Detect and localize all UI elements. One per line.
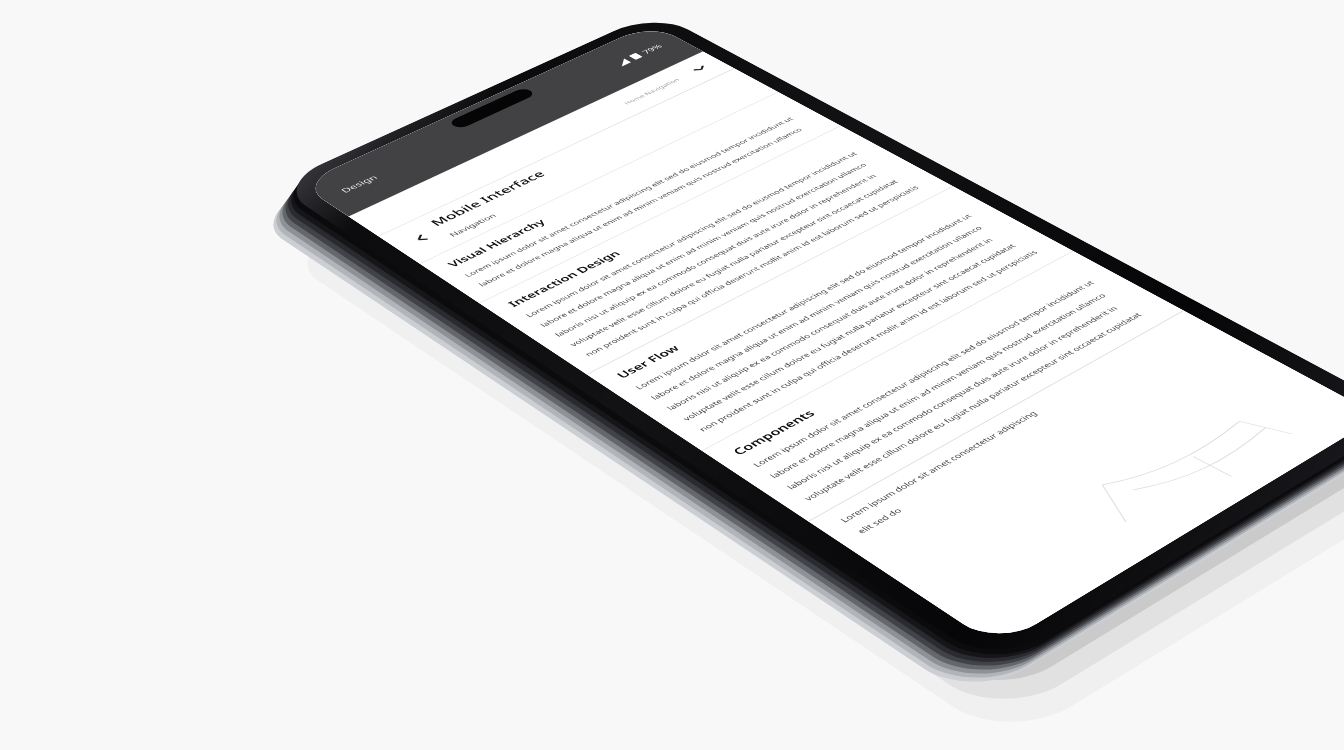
- button[interactable]: Back: [393, 223, 449, 254]
- staticText: Mobile Interface: [426, 168, 549, 229]
- staticText: non proident sunt in culpa qui officia d…: [696, 248, 1040, 433]
- staticText: Lorem ipsum dolor sit amet consectetur a…: [523, 150, 859, 319]
- staticText: voluptate velit esse cillum dolore eu fu…: [567, 178, 901, 348]
- staticText: Lorem ipsum dolor sit amet consectetur a…: [462, 116, 795, 279]
- staticText: Visual Hierarchy: [444, 217, 549, 269]
- button[interactable]: Interaction Design: [480, 126, 953, 374]
- button[interactable]: Design: [338, 173, 381, 194]
- staticText: labore et dolore magna aliqua ut enim ad…: [767, 292, 1108, 480]
- staticText: laboris nisi ut aliquip ex ea commodo co…: [552, 173, 879, 338]
- staticText: voluptate velit esse cillum dolore eu fu…: [801, 310, 1145, 503]
- staticText: Lorem ipsum dolor sit amet consectetur a…: [750, 279, 1097, 469]
- staticText: labore et dolore magna aliqua ut enim ad…: [476, 126, 804, 288]
- staticText: Interaction Design: [504, 248, 623, 309]
- button[interactable]: Lorem ipsum dolor sit amet consectetur a…: [809, 311, 1234, 554]
- staticText: laboris nisi ut aliquip ex ea commodo co…: [784, 304, 1120, 491]
- button[interactable]: Back: [378, 68, 778, 264]
- button[interactable]: Home Navigation: [622, 77, 681, 105]
- button[interactable]: Components: [702, 251, 1183, 521]
- button[interactable]: User Flow: [587, 186, 1073, 451]
- staticText: elit sed do: [854, 506, 905, 535]
- staticText: non proident sunt in culpa qui officia d…: [582, 184, 921, 358]
- button[interactable]: Expand: [678, 58, 721, 79]
- staticText: User Flow: [612, 342, 683, 380]
- staticText: 79%: [639, 43, 665, 55]
- staticText: labore et dolore magna aliqua ut enim ad…: [537, 161, 869, 328]
- staticText: Lorem ipsum dolor sit amet consectetur a…: [837, 409, 1040, 524]
- staticText: Navigation: [446, 212, 499, 238]
- staticText: Components: [729, 407, 819, 457]
- staticText: Lorem ipsum dolor sit amet consectetur a…: [632, 212, 974, 391]
- button[interactable]: Visual Hierarchy: [420, 92, 841, 303]
- staticText: laboris nisi ut aliquip ex ea commodo co…: [664, 236, 995, 412]
- staticText: labore et dolore magna aliqua ut enim ad…: [648, 224, 985, 401]
- staticText: voluptate velit esse cillum dolore eu fu…: [680, 242, 1018, 422]
